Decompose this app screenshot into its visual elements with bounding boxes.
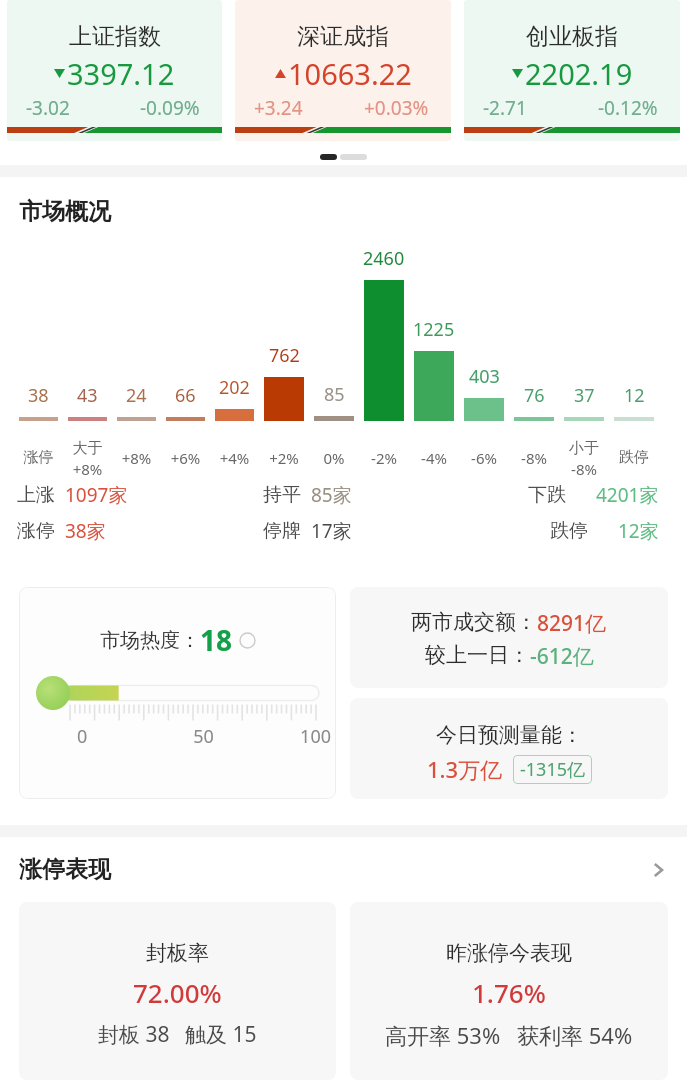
staticText: 202 xyxy=(219,375,250,400)
staticText: 封板率 xyxy=(146,940,209,966)
staticText: 下跌 xyxy=(528,483,566,507)
staticText: 762 xyxy=(269,343,300,368)
button[interactable]: 上证指数 xyxy=(7,0,222,141)
staticText: 1.76% xyxy=(472,975,546,1010)
staticText: 停牌 xyxy=(263,519,301,543)
staticText: +3.24 xyxy=(254,95,303,121)
staticText: 昨涨停今表现 xyxy=(446,940,572,966)
staticText: 持平 xyxy=(263,483,301,507)
staticText: +6% xyxy=(161,448,210,468)
staticText: 8291亿 xyxy=(537,609,607,638)
button[interactable]: 市场热度： xyxy=(19,587,336,799)
staticText: 100 xyxy=(246,724,331,749)
staticText: 涨停 xyxy=(17,519,55,543)
staticText: 两市成交额： xyxy=(411,609,537,635)
button[interactable]: 今日预测量能： xyxy=(350,698,668,799)
staticText: 0% xyxy=(309,448,359,468)
staticText: 12家 xyxy=(618,518,659,544)
staticText: 上涨 xyxy=(17,483,55,507)
staticText: 创业板指 xyxy=(526,22,618,51)
staticText: 0 xyxy=(77,724,161,749)
staticText: -2.71 xyxy=(483,95,527,121)
staticText: 38 xyxy=(28,383,49,408)
other: 查看更多 xyxy=(648,860,668,880)
staticText: 403 xyxy=(469,364,500,389)
staticText: +8% xyxy=(112,448,161,468)
button[interactable]: 封板率 xyxy=(19,902,336,1080)
staticText: 38家 xyxy=(65,518,106,544)
staticText: 4201家 xyxy=(596,482,659,508)
staticText: 较上一日： xyxy=(425,642,530,668)
staticText: 涨停表现 xyxy=(19,855,111,884)
staticText: -4% xyxy=(409,448,459,468)
staticText: 今日预测量能： xyxy=(436,722,583,748)
staticText: 跌停 xyxy=(550,519,588,543)
button[interactable]: 涨停表现 xyxy=(19,855,668,884)
staticText: 12 xyxy=(624,383,645,408)
staticText: 50 xyxy=(161,724,246,749)
staticText: -2% xyxy=(359,448,409,468)
staticText: 1097家 xyxy=(65,482,128,508)
staticText: 76 xyxy=(524,383,545,408)
staticText: -6% xyxy=(459,448,509,468)
staticText: 获利率 54% xyxy=(517,1020,633,1050)
staticText: 3397.12 xyxy=(67,54,175,93)
staticText: -8% xyxy=(509,448,559,468)
staticText: +0.03% xyxy=(364,95,429,121)
staticText: 66 xyxy=(175,383,196,408)
staticText: 封板 38 xyxy=(98,1020,170,1049)
staticText: 18 xyxy=(200,621,233,659)
staticText: 17家 xyxy=(311,518,352,544)
staticText: 1225 xyxy=(413,317,455,342)
staticText: 85家 xyxy=(311,482,352,508)
button[interactable]: 创业板指 xyxy=(464,0,680,141)
staticText: 涨停 xyxy=(14,448,63,467)
staticText: 大于 +8% xyxy=(63,439,112,480)
staticText: 85 xyxy=(324,382,345,407)
staticText: 市场概况 xyxy=(19,197,111,226)
staticText: -0.12% xyxy=(598,95,658,121)
staticText: 43 xyxy=(77,383,98,408)
staticText: 高开率 53% xyxy=(385,1020,501,1050)
staticText: 上证指数 xyxy=(69,22,161,51)
staticText: 触及 15 xyxy=(185,1020,257,1049)
button[interactable]: 昨涨停今表现 xyxy=(350,902,668,1080)
staticText: +4% xyxy=(210,448,259,468)
staticText: 2460 xyxy=(363,246,405,271)
staticText: 37 xyxy=(574,383,595,408)
staticText: 市场热度： xyxy=(100,628,200,653)
staticText: +2% xyxy=(259,448,309,468)
staticText: -3.02 xyxy=(26,95,70,121)
button[interactable]: 两市成交额： xyxy=(350,587,668,688)
staticText: 10663.22 xyxy=(288,54,412,93)
staticText: 小于 -8% xyxy=(559,439,609,480)
staticText: 24 xyxy=(126,383,147,408)
staticText: -0.09% xyxy=(140,95,200,121)
button[interactable]: 深证成指 xyxy=(235,0,451,141)
staticText: 1.3万亿 xyxy=(427,754,503,784)
staticText: 深证成指 xyxy=(297,22,389,51)
staticText: -612亿 xyxy=(530,642,594,671)
staticText: -1315亿 xyxy=(520,757,585,782)
staticText: 2202.19 xyxy=(525,54,633,93)
staticText: 72.00% xyxy=(133,975,222,1010)
staticText: 跌停 xyxy=(609,448,659,467)
